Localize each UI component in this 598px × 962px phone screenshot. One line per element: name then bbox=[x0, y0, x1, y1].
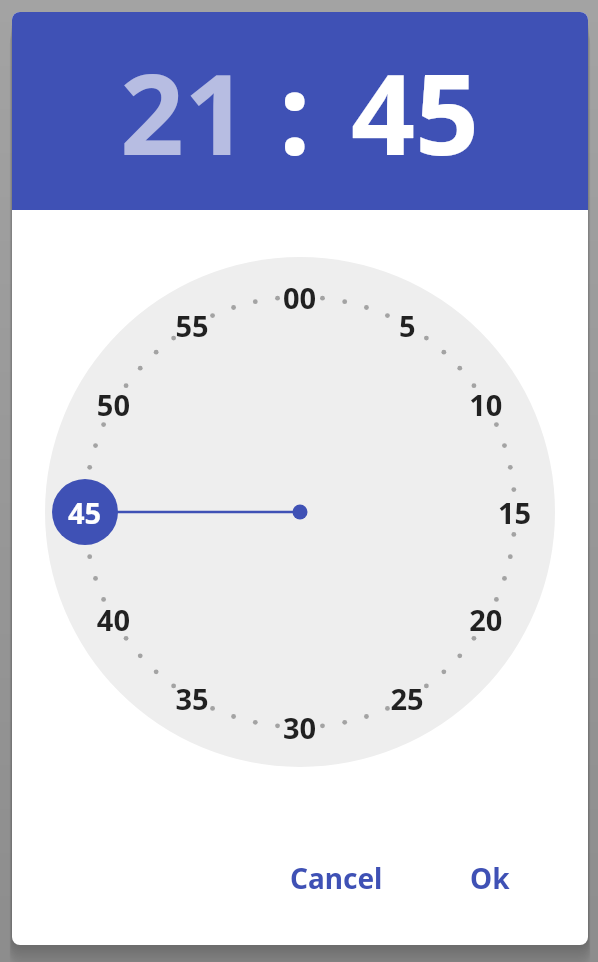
button[interactable]: 21 bbox=[120, 35, 249, 188]
button[interactable]: Ok bbox=[415, 843, 565, 913]
staticText: Cancel bbox=[290, 859, 383, 897]
staticText: : bbox=[279, 35, 311, 188]
staticText: 45 bbox=[351, 35, 480, 188]
staticText: 21 bbox=[120, 35, 249, 188]
button[interactable]: 45 bbox=[351, 35, 480, 188]
button[interactable]: Cancel bbox=[261, 843, 411, 913]
staticText: Ok bbox=[470, 859, 510, 897]
